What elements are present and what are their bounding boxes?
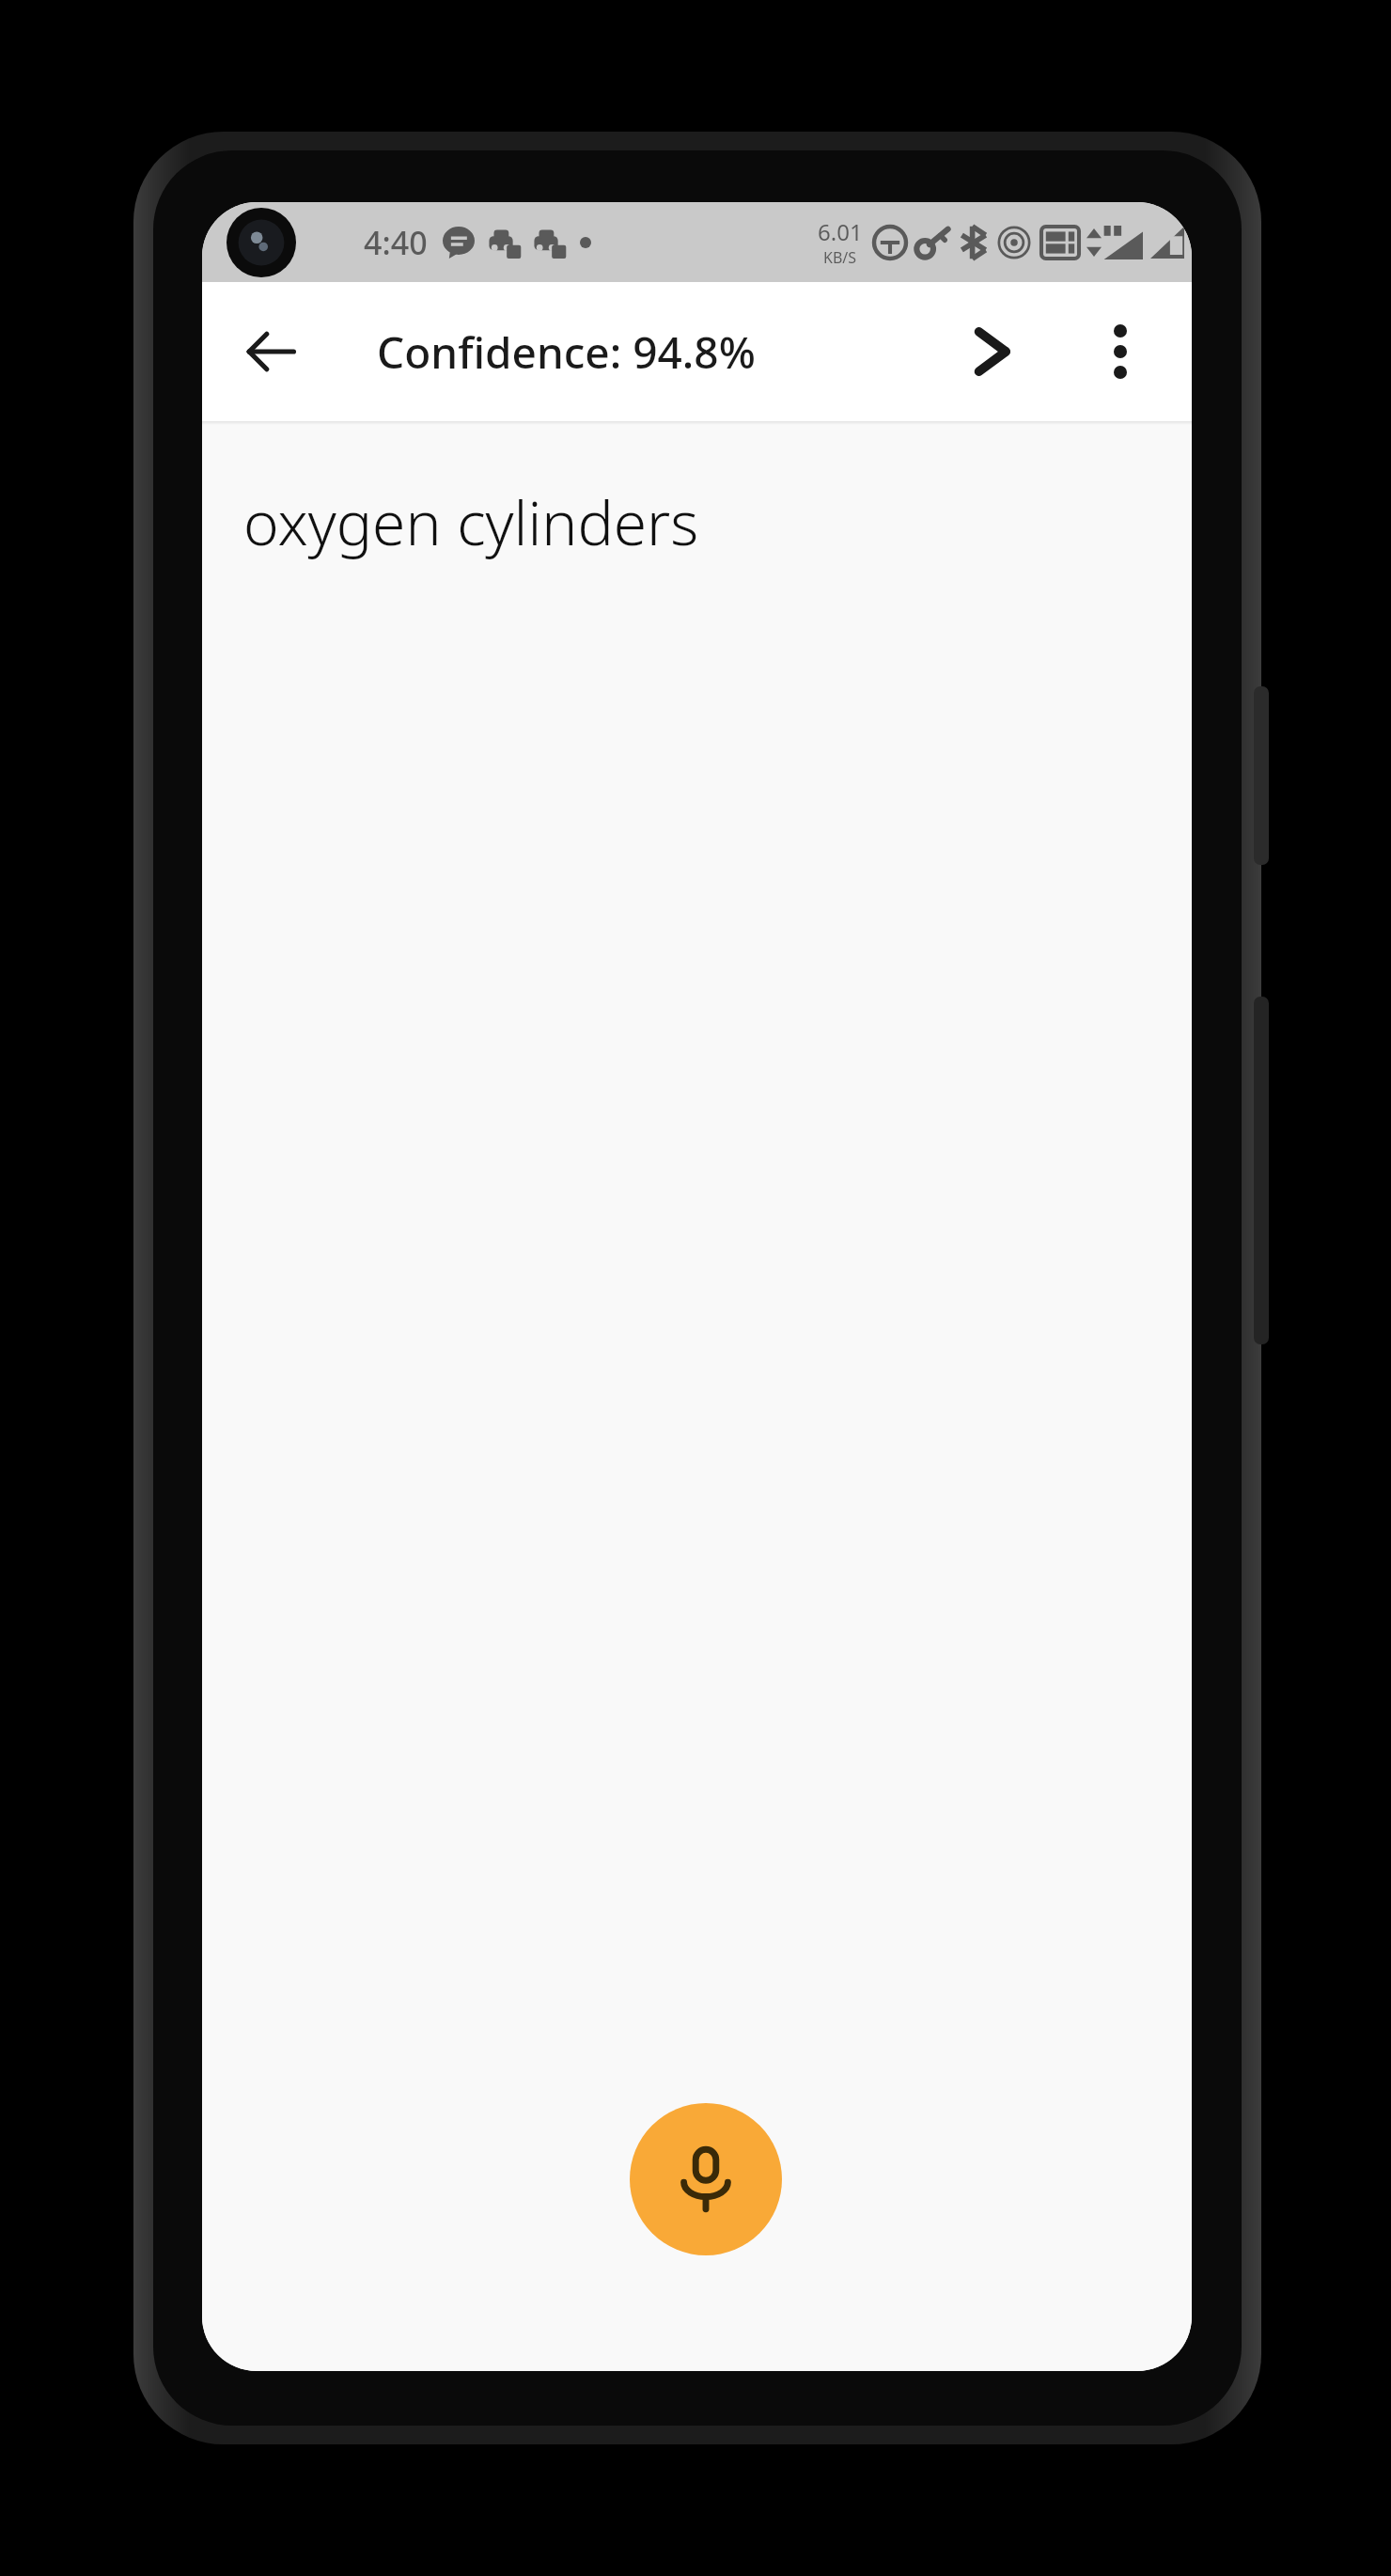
staticText: KB/S — [823, 247, 857, 268]
button[interactable]: Next — [942, 302, 1041, 401]
button[interactable]: Voice input — [630, 2103, 782, 2255]
button[interactable]: Back — [219, 300, 322, 403]
staticText: 4:40 — [364, 221, 428, 264]
staticText: Confidence: 94.8% — [377, 322, 756, 382]
staticText: 6.01 — [818, 216, 863, 247]
button[interactable]: More options — [1073, 302, 1167, 401]
staticText: oxygen cylinders — [243, 481, 699, 563]
